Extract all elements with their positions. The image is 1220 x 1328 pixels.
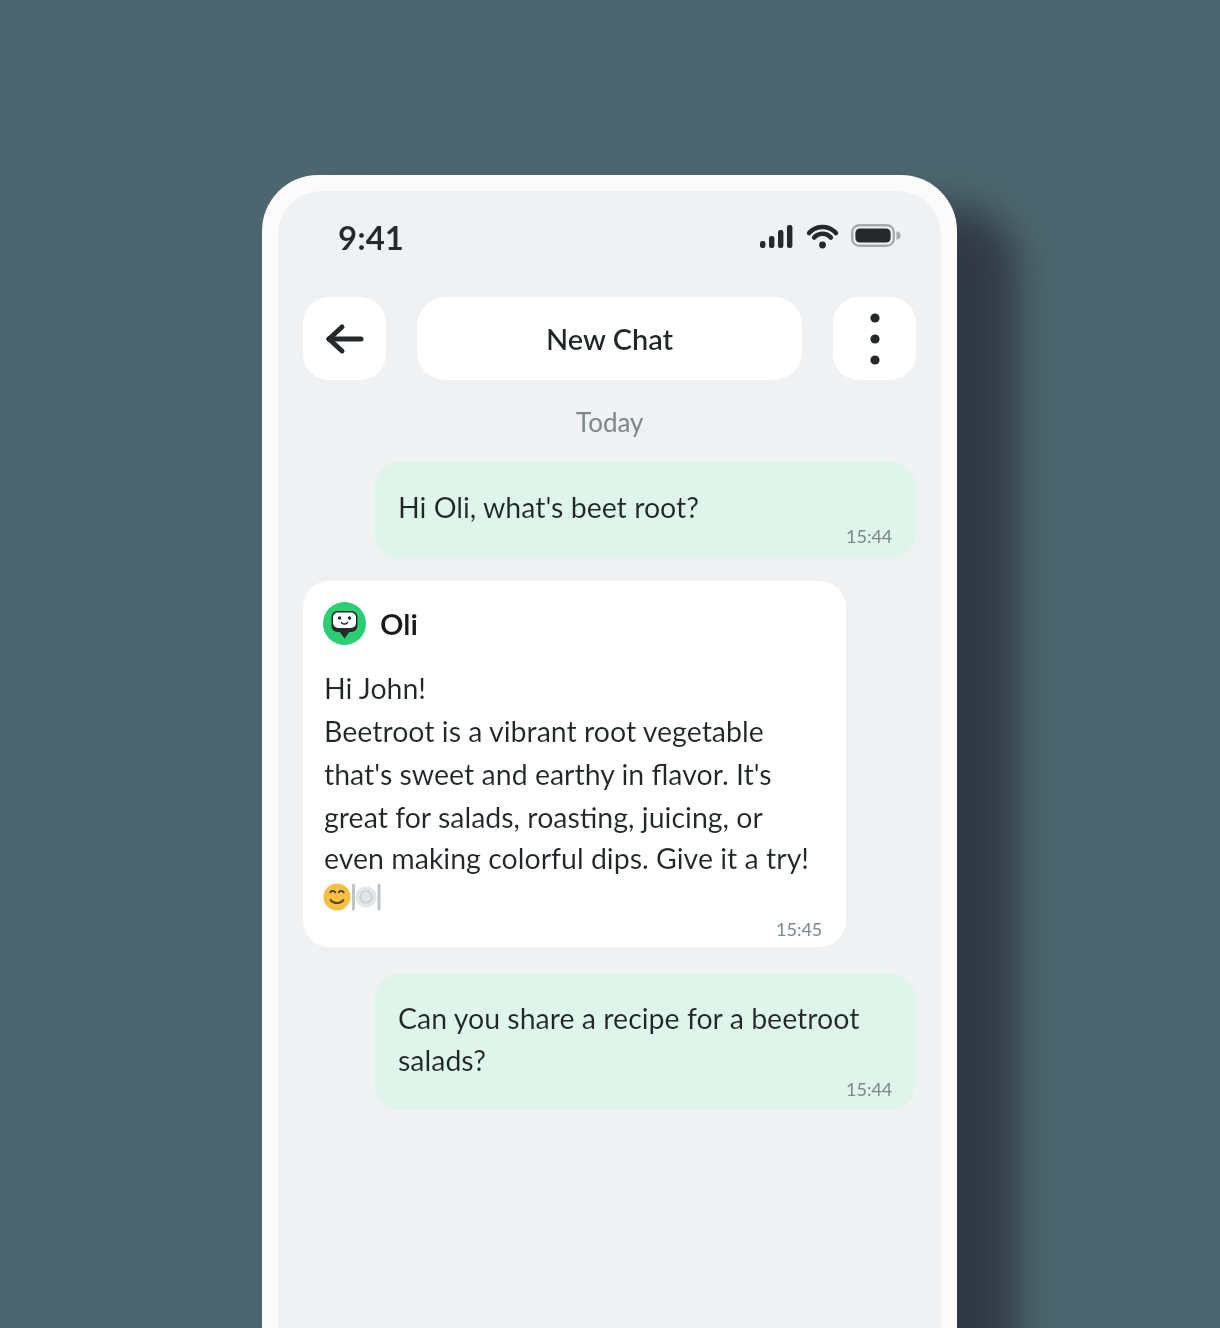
button[interactable] [303, 297, 386, 380]
staticText: Hi Oli, what's beet root? [398, 490, 699, 524]
button[interactable] [833, 297, 916, 380]
staticText: 15:45 [776, 918, 823, 940]
staticText: Beetroot is a vibrant root vegetable [324, 714, 764, 748]
staticText: Hi John! [324, 671, 427, 705]
staticText: that's sweet and earthy in flavor. It's [324, 757, 772, 791]
button[interactable] [374, 462, 916, 559]
staticText: 15:44 [846, 1078, 893, 1100]
staticText: Today [576, 406, 644, 437]
staticText: Can you share a recipe for a beetroot [398, 1001, 860, 1035]
staticText: great for salads, roasting, juicing, or [324, 800, 763, 834]
staticText: salads? [398, 1043, 487, 1077]
staticText: New Chat [546, 321, 674, 356]
staticText: Oli [380, 606, 418, 641]
staticText: 9:41 [338, 217, 404, 257]
staticText: even making colorful dips. Give it a try… [324, 841, 810, 875]
button[interactable]: New Chat [417, 297, 802, 380]
staticText: 15:44 [846, 525, 893, 547]
button[interactable] [303, 581, 846, 947]
button[interactable] [374, 974, 916, 1110]
